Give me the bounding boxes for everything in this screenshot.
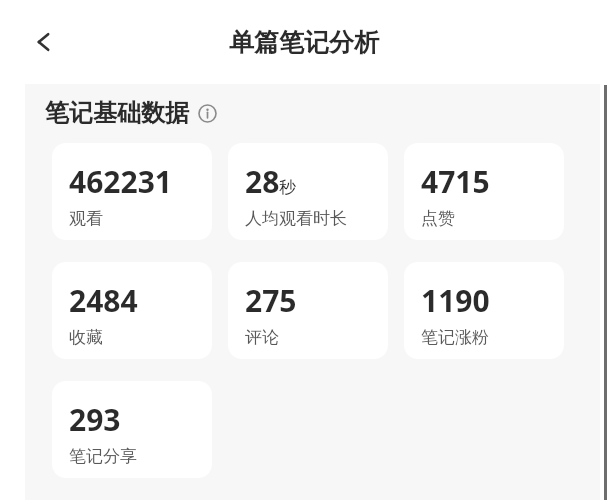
other: 说明 [198,104,217,123]
button[interactable]: 293 [52,381,212,478]
button[interactable]: 28秒 [228,143,388,240]
staticText: 462231 [69,161,172,202]
staticText: 点赞 [421,208,455,229]
staticText: 观看 [69,208,103,229]
staticText: 2484 [69,280,138,321]
staticText: 293 [69,399,121,440]
staticText: 275 [245,280,297,321]
button[interactable]: 275 [228,262,388,359]
staticText: 笔记基础数据 [45,98,189,128]
staticText: 人均观看时长 [245,208,347,229]
staticText: 评论 [245,327,279,348]
staticText: 笔记分享 [69,446,137,467]
button[interactable]: 2484 [52,262,212,359]
staticText: 笔记涨粉 [421,327,489,348]
staticText: 单篇笔记分析 [229,27,379,58]
button[interactable]: 4715 [404,143,564,240]
staticText: 1190 [421,280,490,321]
staticText: 28秒 [245,161,297,202]
staticText: 4715 [421,161,490,202]
staticText: 收藏 [69,327,103,348]
button[interactable]: 1190 [404,262,564,359]
button[interactable]: 笔记基础数据 [45,98,217,128]
button[interactable]: 返回 [22,20,66,64]
button[interactable]: 462231 [52,143,212,240]
